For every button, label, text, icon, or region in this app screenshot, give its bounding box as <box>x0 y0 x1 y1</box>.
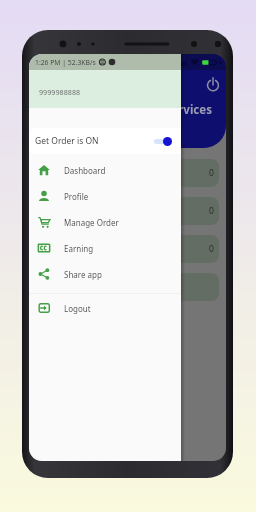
button[interactable]: Dashboard <box>29 157 181 183</box>
staticText: 9999988888 <box>39 87 81 97</box>
button[interactable]: Power <box>205 76 221 92</box>
staticText: Services <box>165 102 212 118</box>
button[interactable]: Profile <box>29 183 181 209</box>
staticText: Logout <box>64 303 91 314</box>
button[interactable] <box>36 273 219 301</box>
staticText: 0 <box>209 167 214 179</box>
button[interactable]: 0 <box>36 197 219 225</box>
staticText: 0 <box>209 243 214 255</box>
staticText: Earning <box>64 243 94 254</box>
button[interactable]: Earning <box>29 235 181 261</box>
staticText: Manage Order <box>64 217 119 228</box>
staticText: Dashboard <box>64 165 106 176</box>
staticText: 1:26 PM | 52.3KB/s <box>35 58 96 67</box>
staticText: 0 <box>209 205 214 217</box>
button[interactable]: Logout <box>29 295 181 321</box>
button[interactable]: 0 <box>36 159 219 187</box>
button[interactable]: Share app <box>29 261 181 287</box>
staticText: Profile <box>64 191 89 202</box>
button[interactable]: Manage Order <box>29 209 181 235</box>
button[interactable]: 0 <box>36 235 219 263</box>
staticText: Get Order is ON <box>35 135 99 147</box>
button[interactable]: Get Order is ON <box>29 128 181 154</box>
staticText: Share app <box>64 269 102 280</box>
